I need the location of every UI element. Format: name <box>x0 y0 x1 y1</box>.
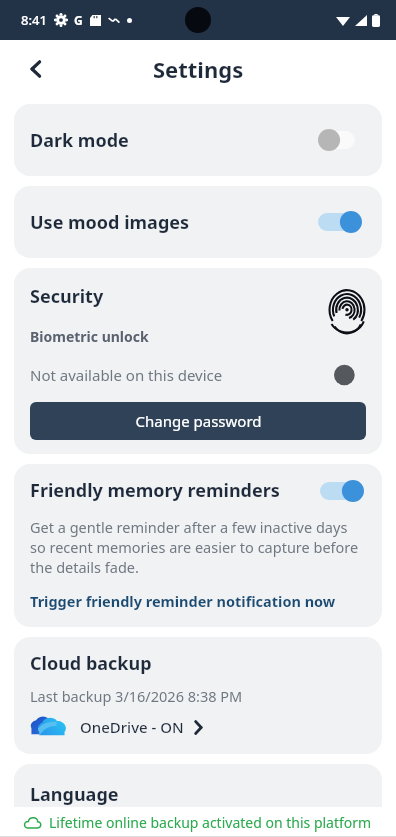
staticText: Security <box>30 284 104 309</box>
other: OneDrive <box>30 714 66 740</box>
staticText: Trigger friendly reminder notification n… <box>30 591 336 611</box>
staticText: Biometric unlock <box>30 327 149 346</box>
other: Fingerprint <box>328 290 366 328</box>
staticText: Lifetime online backup activated on this… <box>49 813 372 832</box>
button[interactable]: Use mood images <box>14 186 382 258</box>
staticText: 8:41 <box>21 11 47 29</box>
button[interactable]: Dark mode <box>14 104 382 176</box>
staticText: OneDrive - ON <box>80 717 184 737</box>
button[interactable]: OneDrive <box>30 714 203 740</box>
staticText: Dark mode <box>30 128 318 153</box>
button[interactable]: Friendly memory reminders <box>30 478 366 503</box>
staticText: Last backup 3/16/2026 8:38 PM <box>30 686 243 706</box>
button[interactable]: Change password <box>30 402 366 440</box>
staticText: Cloud backup <box>30 651 152 676</box>
staticText: Settings <box>153 54 244 84</box>
button[interactable]: Back <box>14 47 58 91</box>
staticText: Not available on this device <box>30 365 332 385</box>
button[interactable]: Not available on this device <box>30 364 366 386</box>
button[interactable]: Trigger friendly reminder notification n… <box>30 591 336 611</box>
staticText: Friendly memory reminders <box>30 478 320 503</box>
staticText: Change password <box>135 411 262 431</box>
staticText: Get a gentle reminder after a few inacti… <box>30 517 366 577</box>
staticText: Use mood images <box>30 210 318 235</box>
button[interactable]: Language <box>14 764 382 824</box>
staticText: G <box>74 12 83 28</box>
staticText: Language <box>30 782 119 807</box>
